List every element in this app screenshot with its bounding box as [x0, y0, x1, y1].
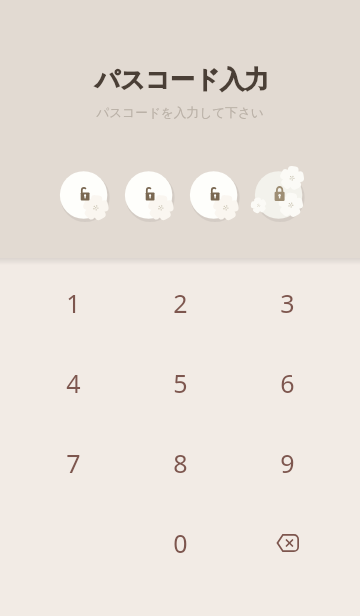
staticText: 3: [280, 286, 295, 320]
staticText: 7: [66, 446, 81, 480]
button[interactable]: 4: [35, 354, 111, 412]
staticText: パスコード入力: [2, 64, 360, 95]
button[interactable]: Delete: [249, 514, 325, 572]
staticText: 2: [173, 286, 188, 320]
staticText: 9: [280, 446, 295, 480]
button[interactable]: 2: [142, 274, 218, 332]
staticText: 0: [173, 526, 188, 560]
staticText: 1: [66, 286, 81, 320]
staticText: 4: [66, 366, 81, 400]
button[interactable]: 8: [142, 434, 218, 492]
staticText: 8: [173, 446, 188, 480]
button[interactable]: 5: [142, 354, 218, 412]
button[interactable]: 3: [249, 274, 325, 332]
staticText: 6: [280, 366, 295, 400]
button[interactable]: 6: [249, 354, 325, 412]
staticText: 5: [173, 366, 188, 400]
button[interactable]: 9: [249, 434, 325, 492]
button[interactable]: 0: [142, 514, 218, 572]
button[interactable]: 7: [35, 434, 111, 492]
staticText: パスコードを入力して下さい: [0, 105, 360, 121]
button[interactable]: 1: [35, 274, 111, 332]
